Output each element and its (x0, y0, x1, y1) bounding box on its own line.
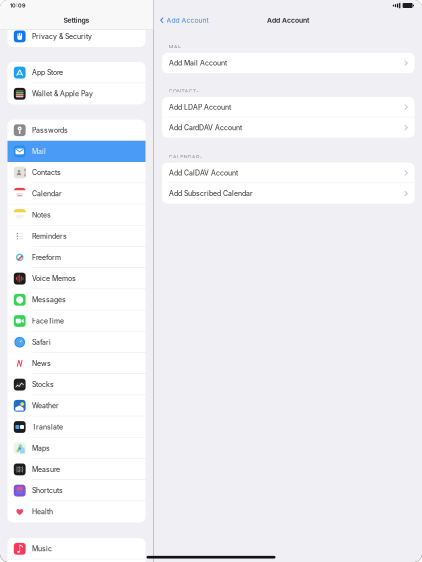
button[interactable]: Wallet & Apple Pay (7, 83, 145, 104)
staticText: CALENDARS (168, 154, 202, 167)
button[interactable]: Mail (7, 141, 145, 162)
button[interactable]: Shortcuts (7, 480, 145, 501)
button[interactable]: Stocks (7, 374, 145, 395)
staticText: Privacy & Security (32, 32, 92, 41)
button[interactable]: News (7, 353, 145, 374)
staticText: Music (32, 545, 52, 553)
staticText: Calendar (32, 190, 62, 198)
staticText: Add Account (267, 16, 309, 24)
staticText: Add Mail Account (169, 59, 227, 67)
button[interactable]: Add Account (154, 11, 213, 29)
button[interactable]: Weather (7, 395, 145, 416)
staticText: Safari (32, 338, 51, 346)
staticText: ♪ (16, 542, 23, 555)
staticText: Settings (63, 16, 89, 24)
staticText: Weather (32, 402, 59, 410)
staticText: FaceTime (32, 317, 64, 325)
staticText: 10:09 (10, 2, 25, 9)
staticText: Mail (32, 147, 46, 156)
staticText: Add LDAP Account (169, 103, 231, 111)
staticText: Health (32, 508, 53, 516)
button[interactable]: FaceTime (7, 310, 145, 332)
button[interactable]: Measure (7, 459, 145, 480)
staticText: MAIL (168, 44, 181, 57)
staticText: Wallet & Apple Pay (32, 90, 93, 98)
button[interactable]: Messages (7, 289, 145, 310)
button[interactable]: Calendar (7, 183, 145, 204)
staticText: Notes (32, 211, 51, 219)
button[interactable]: Translate (7, 416, 145, 438)
staticText: Contacts (32, 168, 61, 177)
staticText: Add Account (166, 16, 208, 24)
button[interactable]: Add LDAP Account (162, 97, 415, 117)
staticText: Voice Memos (32, 274, 76, 283)
button[interactable]: Add Subscribed Calendar (162, 183, 415, 204)
staticText: Add CardDAV Account (169, 123, 242, 132)
staticText: Messages (32, 296, 66, 304)
staticText: Freeform (32, 253, 61, 262)
button[interactable]: Maps (7, 438, 145, 459)
staticText: Translate (32, 423, 63, 431)
button[interactable]: ♪ (7, 538, 145, 559)
staticText: Maps (32, 444, 50, 452)
button[interactable]: Add Mail Account (162, 53, 415, 73)
staticText: Passwords (32, 126, 68, 134)
button[interactable]: Health (7, 501, 145, 522)
staticText: CONTACTS (168, 88, 199, 101)
staticText: Shortcuts (32, 486, 63, 495)
button[interactable]: Voice Memos (7, 268, 145, 289)
button[interactable]: Reminders (7, 226, 145, 247)
staticText: App Store (32, 68, 63, 77)
button[interactable]: App Store (7, 62, 145, 83)
staticText: News (32, 359, 51, 368)
button[interactable]: Passwords (7, 120, 145, 141)
button[interactable]: Add CalDAV Account (162, 163, 415, 183)
button[interactable]: Add CardDAV Account (162, 117, 415, 138)
staticText: Stocks (32, 380, 54, 389)
staticText: Measure (32, 465, 60, 474)
staticText: Reminders (32, 232, 67, 240)
button[interactable]: Freeform (7, 247, 145, 268)
button[interactable]: Notes (7, 204, 145, 226)
staticText: Add Subscribed Calendar (169, 189, 253, 198)
staticText: Add CalDAV Account (169, 169, 238, 177)
button[interactable]: Contacts (7, 162, 145, 183)
button[interactable]: Safari (7, 332, 145, 353)
button[interactable]: Privacy & Security (7, 26, 145, 47)
